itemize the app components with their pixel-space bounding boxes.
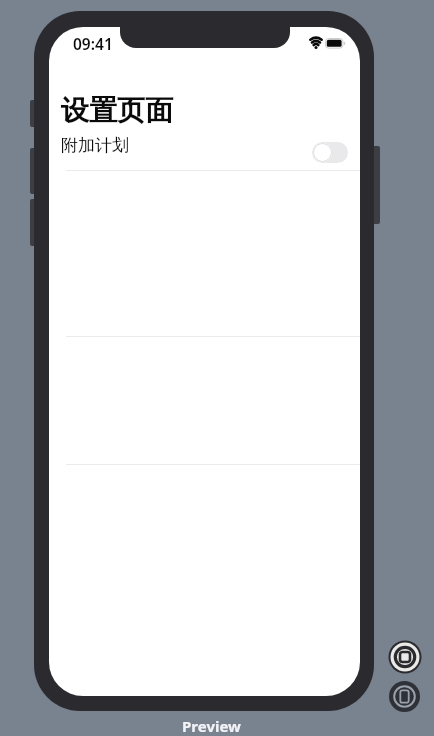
button[interactable] [312,142,348,163]
button[interactable] [49,130,360,170]
staticText: 设置页面 [61,93,173,128]
button[interactable] [388,680,421,713]
staticText: Preview [182,716,241,736]
button[interactable] [388,640,422,674]
staticText: 09:41 [73,33,113,54]
staticText: 附加计划 [61,135,129,156]
